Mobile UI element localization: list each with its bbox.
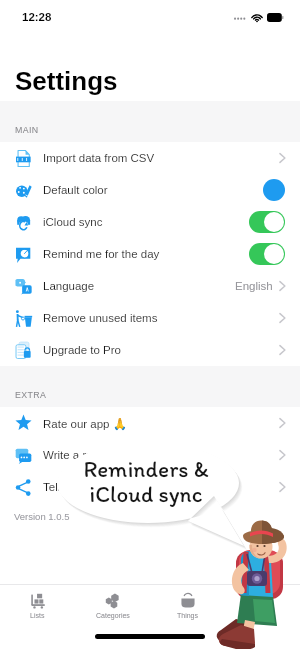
staticText: Tell a friend: [43, 481, 102, 494]
button[interactable]: Remove unused items: [0, 302, 300, 334]
button[interactable]: iCloud sync: [0, 206, 300, 238]
button[interactable]: Import data from CSV: [0, 142, 300, 174]
button[interactable]: Language: [0, 270, 300, 302]
staticText: iCloud sync: [43, 216, 103, 229]
button[interactable]: Categories: [75, 585, 150, 620]
staticText: Default color: [43, 184, 108, 197]
button[interactable]: Default color: [263, 179, 285, 201]
button[interactable]: Rate our app 🙏: [0, 407, 300, 439]
staticText: Reminders & iCloud sync: [83, 455, 209, 508]
button[interactable]: Things: [150, 585, 225, 620]
staticText: Language: [43, 280, 95, 293]
button[interactable]: Settings: [225, 585, 300, 620]
staticText: Settings: [250, 612, 276, 620]
staticText: Remove unused items: [43, 312, 158, 325]
staticText: Things: [177, 612, 199, 620]
staticText: Write a review: [43, 449, 116, 462]
button[interactable]: Lists: [0, 585, 75, 620]
staticText: Settings: [15, 66, 118, 95]
button[interactable]: Remind me for the day: [249, 243, 285, 265]
staticText: Version 1.0.5: [14, 511, 70, 522]
button[interactable]: Default color: [0, 174, 300, 206]
staticText: 12:28: [22, 11, 52, 24]
staticText: Rate our app 🙏: [43, 417, 128, 430]
staticText: MAIN: [15, 125, 39, 135]
button[interactable]: iCloud sync: [249, 211, 285, 233]
button[interactable]: Write a review: [0, 439, 300, 471]
staticText: Import data from CSV: [43, 152, 155, 165]
staticText: English: [235, 280, 273, 293]
staticText: Categories: [96, 612, 130, 620]
button[interactable]: Remind me for the day: [0, 238, 300, 270]
button[interactable]: Upgrade to Pro: [0, 334, 300, 366]
staticText: EXTRA: [15, 390, 47, 400]
staticText: Upgrade to Pro: [43, 344, 121, 357]
staticText: Lists: [30, 612, 45, 620]
staticText: Remind me for the day: [43, 248, 160, 261]
button[interactable]: Tell a friend: [0, 471, 300, 503]
